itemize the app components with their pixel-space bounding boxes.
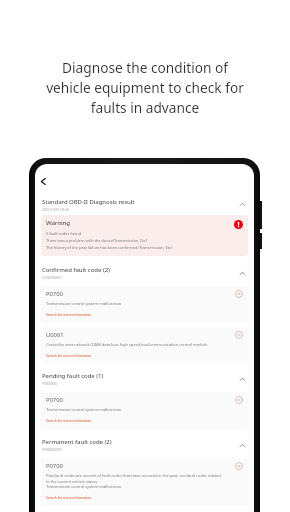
staticText: There was a problem with the device(Tran… xyxy=(46,238,147,244)
button[interactable]: Search for more information xyxy=(46,495,92,500)
button[interactable]: Collapse xyxy=(235,290,243,298)
staticText: Warning xyxy=(46,219,70,227)
button[interactable]: Warning details xyxy=(234,220,243,229)
button[interactable]: Collapse section xyxy=(237,374,248,385)
staticText: Standard OBD-II Diagnosis result xyxy=(42,198,135,206)
staticText: PENDING xyxy=(42,382,58,386)
staticText: 2021/12/01 09:34 xyxy=(42,207,69,211)
staticText: PERMANENT xyxy=(42,448,63,452)
button[interactable]: Collapse section xyxy=(237,199,248,210)
button[interactable]: Collapse xyxy=(235,396,243,404)
staticText: Permanent fault code (2) xyxy=(42,438,112,446)
staticText: Transmission control system malfunction xyxy=(46,407,122,413)
staticText: The history of the past failure has been… xyxy=(46,245,173,251)
button[interactable]: Back xyxy=(37,175,49,187)
button[interactable]: Search for more information xyxy=(46,312,92,317)
button[interactable]: Search for more information xyxy=(46,353,92,358)
staticText: P0700 xyxy=(46,462,63,470)
staticText: CONFIRMED xyxy=(42,276,62,280)
button[interactable]: U0001 xyxy=(41,327,248,364)
staticText: Past fault codes are records of fault co… xyxy=(46,473,224,484)
button[interactable]: Collapse section xyxy=(237,268,248,279)
staticText: Pending fault code (1) xyxy=(42,372,104,380)
staticText: 5 fault codes found xyxy=(46,231,82,237)
staticText: Diagnose the condition of vehicle equipm… xyxy=(0,58,290,117)
button[interactable]: Pending fault code (1) xyxy=(35,372,254,386)
button[interactable]: P0700 xyxy=(41,286,248,323)
button[interactable]: P0700 xyxy=(41,458,248,506)
button[interactable]: Collapse section xyxy=(237,440,248,451)
staticText: U0001 xyxy=(46,331,64,339)
button[interactable]: Permanent fault code (2) xyxy=(35,438,254,452)
button[interactable]: Standard OBD-II Diagnosis result xyxy=(35,198,254,211)
staticText: Transmission control system malfunction xyxy=(46,484,122,490)
button[interactable]: P0700 xyxy=(41,392,248,429)
staticText: P0700 xyxy=(46,396,63,404)
staticText: Controller area network (CAN) data bus: … xyxy=(46,342,208,348)
button[interactable]: Search for more information xyxy=(46,418,92,423)
staticText: Transmission control system malfunction xyxy=(46,301,122,307)
button[interactable]: Confirmed fault code (2) xyxy=(35,266,254,280)
button[interactable]: Warning xyxy=(41,215,248,256)
staticText: P0700 xyxy=(46,290,63,298)
button[interactable]: Collapse xyxy=(235,331,243,339)
staticText: Confirmed fault code (2) xyxy=(42,266,110,274)
button[interactable]: Collapse xyxy=(235,462,243,470)
